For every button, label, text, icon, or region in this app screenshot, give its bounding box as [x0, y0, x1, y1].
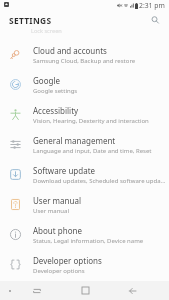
staticText: Cloud and accounts: [33, 45, 107, 56]
staticText: User manual: [33, 195, 81, 206]
button[interactable]: Recents: [12, 281, 61, 300]
button[interactable]: User manual: [0, 190, 169, 220]
button[interactable]: Home: [61, 281, 109, 300]
button[interactable]: General management: [0, 130, 169, 160]
staticText: Lock screen: [31, 27, 62, 35]
staticText: Software update: [33, 165, 96, 176]
button[interactable]: Keyboard indicator: [4, 285, 16, 297]
button[interactable]: Developer options: [0, 250, 169, 280]
button[interactable]: Cloud and accounts: [0, 40, 169, 70]
staticText: 2:31 pm: [139, 1, 165, 10]
staticText: About phone: [33, 225, 82, 236]
staticText: SETTINGS: [9, 15, 52, 26]
staticText: Language and input, Date and time, Reset: [33, 147, 152, 155]
staticText: Developer options: [33, 255, 102, 266]
staticText: Samsung Cloud, Backup and restore: [33, 57, 136, 65]
staticText: User manual: [33, 207, 69, 215]
staticText: Google: [33, 75, 60, 86]
staticText: Status, Legal information, Device name: [33, 237, 144, 245]
button[interactable]: Back: [109, 281, 157, 300]
staticText: Accessibility: [33, 105, 79, 116]
staticText: Download updates, Scheduled software upd…: [33, 177, 166, 185]
staticText: Developer options: [33, 267, 85, 275]
button[interactable]: Software update: [0, 160, 169, 190]
staticText: Google settings: [33, 87, 78, 95]
button[interactable]: Google: [0, 70, 169, 100]
button[interactable]: About phone: [0, 220, 169, 250]
button[interactable]: Accessibility: [0, 100, 169, 130]
staticText: Vision, Hearing, Dexterity and interacti…: [33, 117, 149, 125]
staticText: General management: [33, 135, 116, 146]
button[interactable]: Search: [147, 13, 163, 29]
